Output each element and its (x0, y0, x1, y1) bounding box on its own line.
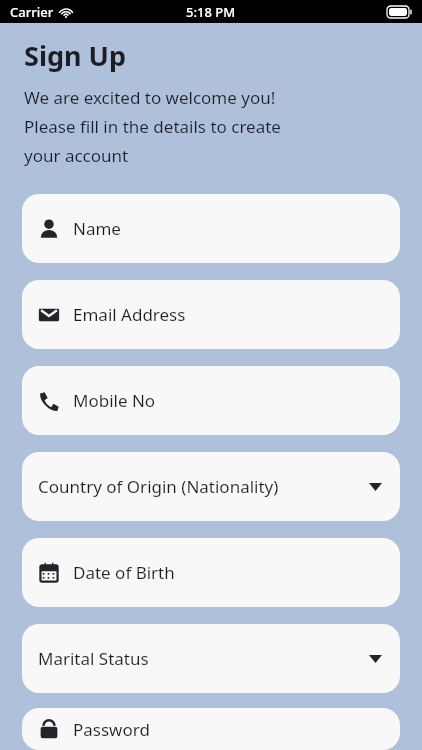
staticText: Password (73, 718, 150, 741)
staticText: Carrier (10, 3, 54, 21)
button[interactable]: Marital Status (22, 624, 400, 693)
button[interactable]: Password (22, 708, 400, 750)
staticText: We are excited to welcome you! Please fi… (24, 86, 281, 167)
button[interactable]: Mobile No (22, 366, 400, 435)
staticText: Mobile No (73, 389, 156, 412)
button[interactable]: Country of Origin (Nationality) (22, 452, 400, 521)
staticText: Email Address (73, 303, 186, 326)
button[interactable]: Email Address (22, 280, 400, 349)
staticText: Date of Birth (73, 561, 175, 584)
button[interactable]: Name (22, 194, 400, 263)
staticText: Sign Up (24, 37, 127, 74)
staticText: Country of Origin (Nationality) (38, 475, 279, 498)
staticText: 5:18 PM (186, 3, 236, 21)
staticText: Marital Status (38, 647, 149, 670)
button[interactable]: Date of Birth (22, 538, 400, 607)
staticText: Name (73, 217, 121, 240)
